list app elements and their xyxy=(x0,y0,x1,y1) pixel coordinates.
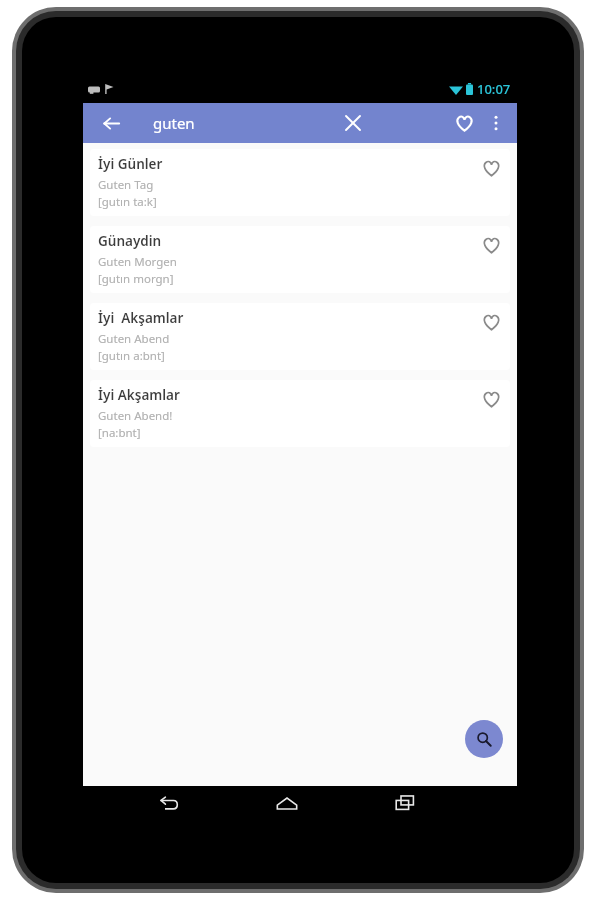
staticText: Guten Tag xyxy=(98,177,154,193)
button[interactable]: Add to favorites xyxy=(478,309,504,335)
staticText: guten xyxy=(153,113,195,133)
button[interactable]: Back xyxy=(141,786,197,820)
staticText: [na:bnt] xyxy=(98,425,141,441)
button[interactable]: İyi Akşamlar xyxy=(90,380,510,447)
staticText: İyi Akşamlar xyxy=(98,309,184,327)
button[interactable]: İyi Akşamlar xyxy=(90,303,510,370)
staticText: Günaydin xyxy=(98,232,162,250)
button[interactable]: Back xyxy=(97,109,125,137)
staticText: [gutın ta:k] xyxy=(98,194,157,210)
staticText: Guten Abend xyxy=(98,331,170,347)
button[interactable]: Add to favorites xyxy=(478,386,504,412)
button[interactable]: İyi Günler xyxy=(90,149,510,216)
button[interactable]: More options xyxy=(483,110,509,136)
button[interactable]: Add to favorites xyxy=(478,232,504,258)
staticText: Guten Morgen xyxy=(98,254,177,270)
button[interactable]: Add to favorites xyxy=(478,155,504,181)
staticText: [gutın morgn] xyxy=(98,271,174,287)
button[interactable]: Search xyxy=(465,720,503,758)
button[interactable]: Recent apps xyxy=(377,786,433,820)
staticText: İyi Günler xyxy=(98,155,163,173)
button[interactable]: Favorites xyxy=(449,108,479,138)
button[interactable]: Home xyxy=(259,786,315,820)
staticText: [gutın a:bnt] xyxy=(98,348,165,364)
button[interactable]: Günaydin xyxy=(90,226,510,293)
staticText: 10:07 xyxy=(477,80,511,98)
button[interactable]: Clear search xyxy=(338,108,368,138)
staticText: İyi Akşamlar xyxy=(98,386,180,404)
staticText: Guten Abend! xyxy=(98,408,173,424)
